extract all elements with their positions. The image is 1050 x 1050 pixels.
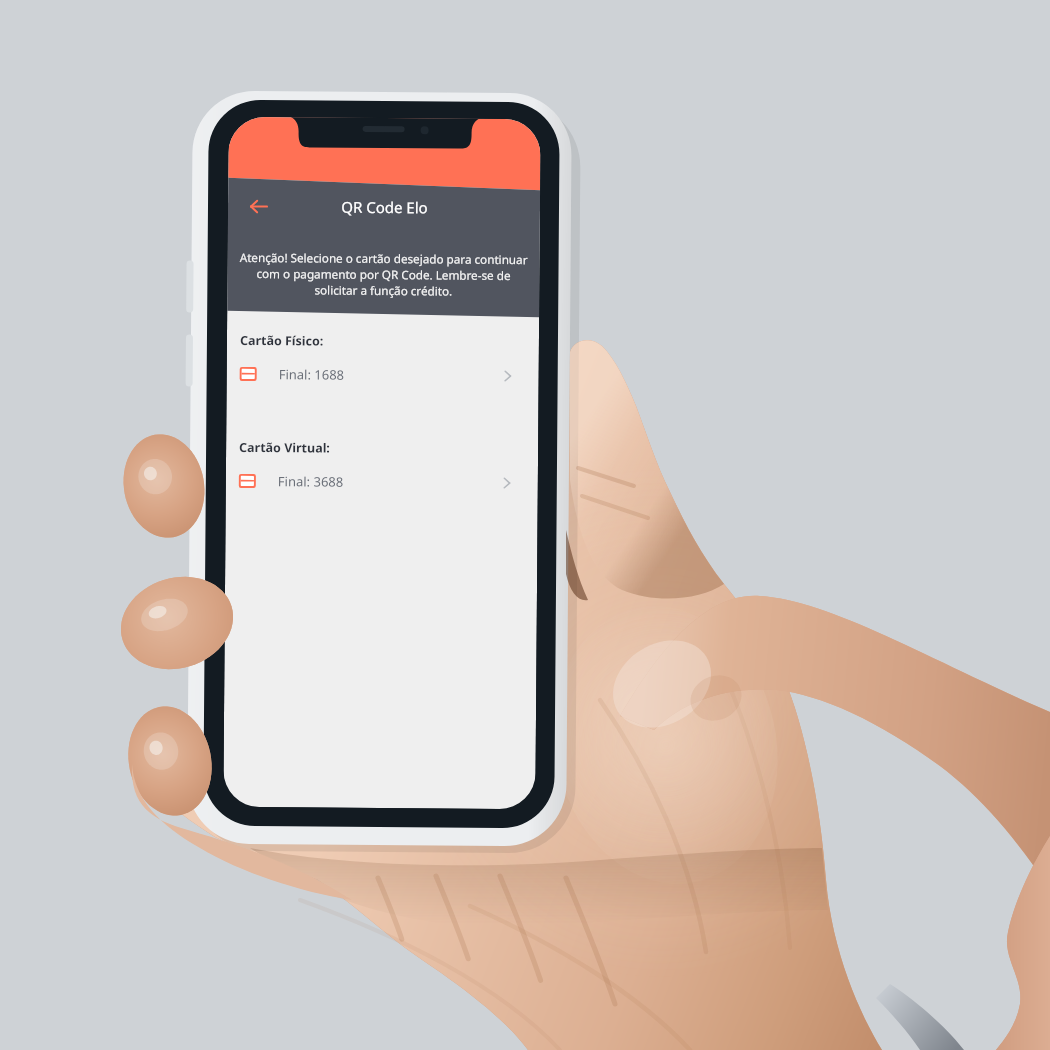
staticText: Final: 1688 [279, 365, 345, 384]
button[interactable]: Final: 3688 [226, 464, 538, 500]
button[interactable]: Final: 1688 [227, 357, 539, 393]
button[interactable]: Back [237, 185, 279, 227]
staticText: QR Code Elo [341, 197, 428, 217]
staticText: Cartão Virtual: [239, 439, 330, 457]
staticText: Atenção! Selecione o cartão desejado par… [236, 249, 531, 299]
staticText: Cartão Físico: [240, 332, 324, 350]
staticText: Final: 3688 [278, 472, 344, 491]
